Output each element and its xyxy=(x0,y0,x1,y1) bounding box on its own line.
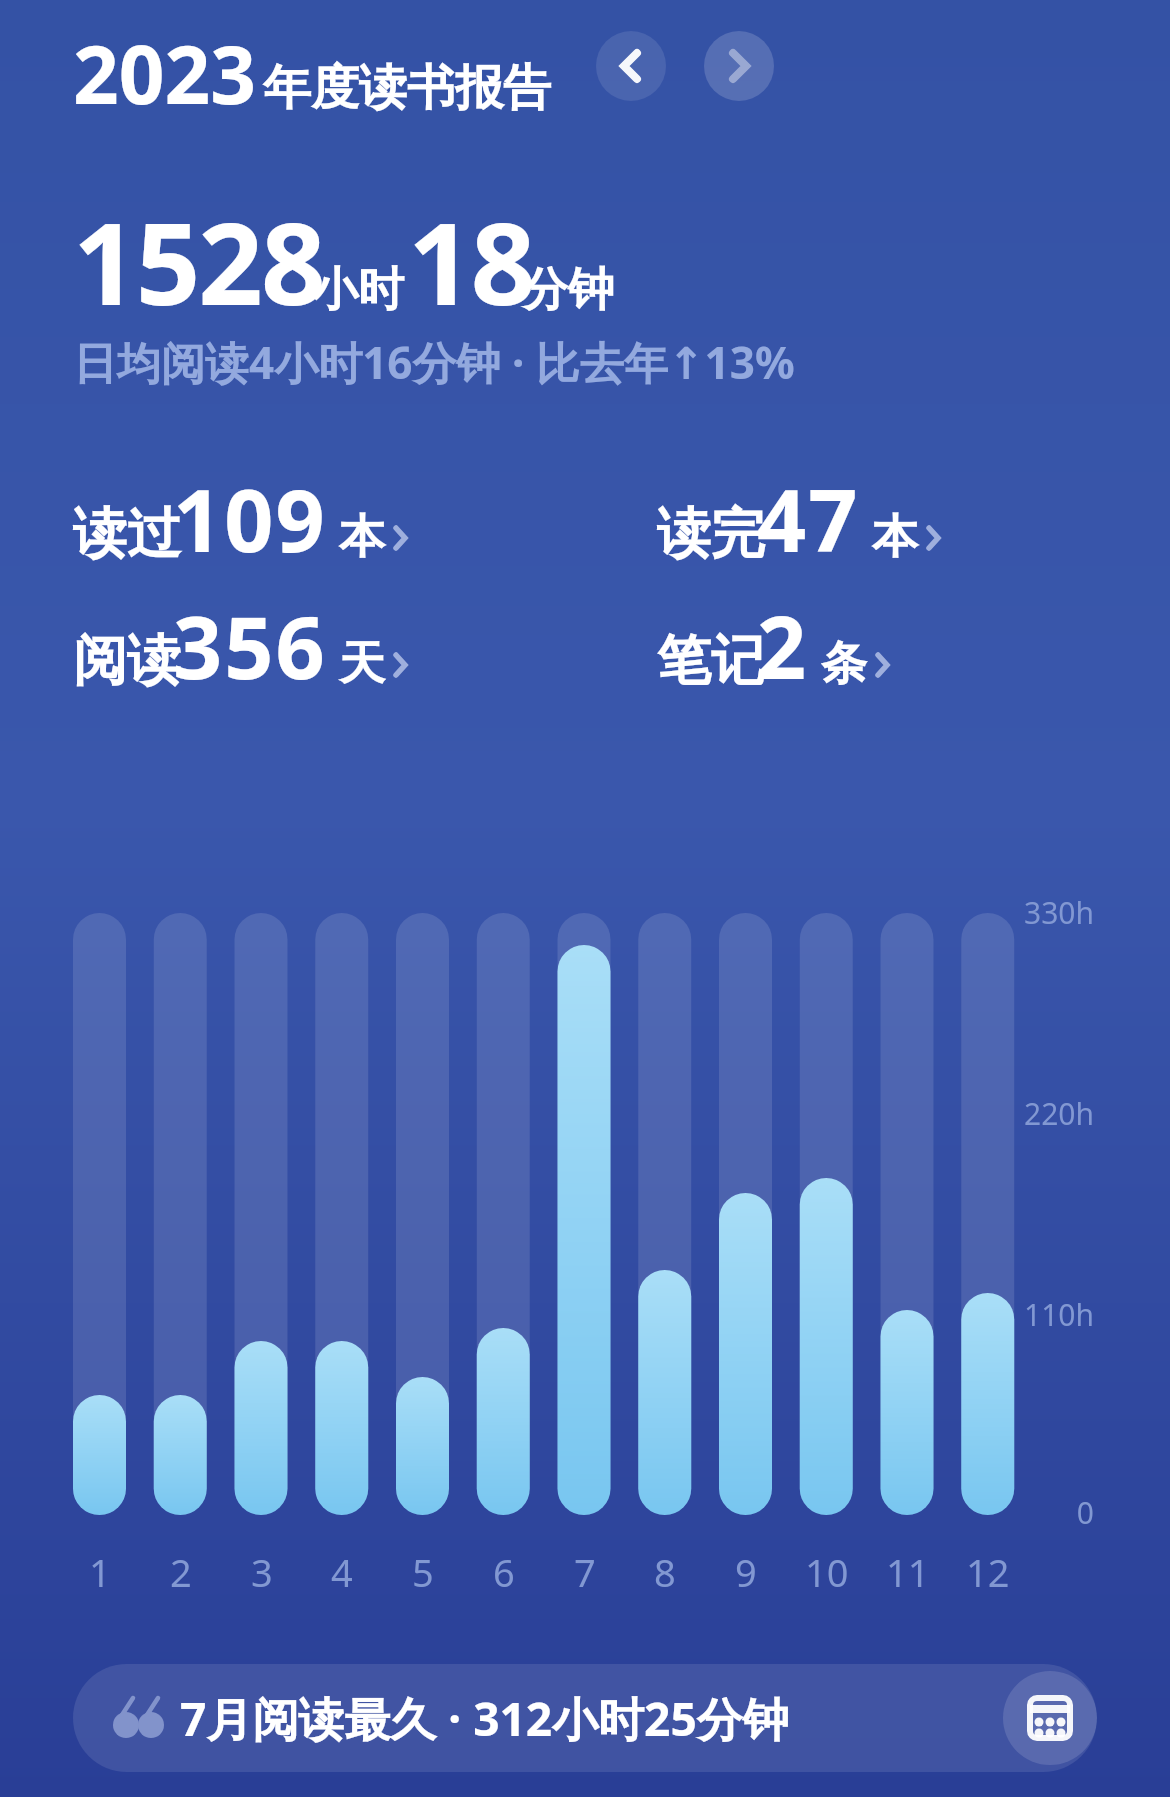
staticText: 18 xyxy=(408,184,534,338)
staticText: 2 xyxy=(757,587,809,704)
staticText: 阅读 xyxy=(73,627,181,695)
staticText: 220h xyxy=(1004,1093,1094,1134)
staticText: 本 xyxy=(872,508,918,566)
staticText: 0 xyxy=(1004,1492,1094,1533)
staticText: 2023 xyxy=(73,18,257,127)
staticText: 小时 xyxy=(312,261,404,319)
staticText: 9 xyxy=(735,1546,757,1598)
staticText: 2 xyxy=(170,1546,192,1598)
button[interactable]: 读过 xyxy=(73,460,409,577)
staticText: 4 xyxy=(331,1546,353,1598)
staticText: 109 xyxy=(173,460,327,577)
staticText: 330h xyxy=(1004,892,1094,933)
staticText: 天 xyxy=(339,635,385,693)
button[interactable] xyxy=(704,31,774,101)
staticText: 12 xyxy=(966,1546,1010,1598)
staticText: 5 xyxy=(412,1546,434,1598)
button[interactable]: 阅读 xyxy=(73,587,409,704)
staticText: 条 xyxy=(821,635,867,693)
staticText: 47 xyxy=(757,460,860,577)
staticText: 8 xyxy=(654,1546,676,1598)
staticText: 10 xyxy=(805,1546,849,1598)
staticText: 读过 xyxy=(73,500,181,568)
staticText: 110h xyxy=(1004,1294,1094,1335)
staticText: 11 xyxy=(886,1546,930,1598)
staticText: 分钟 xyxy=(522,261,614,319)
staticText: 3 xyxy=(251,1546,273,1598)
staticText: 6 xyxy=(493,1546,515,1598)
staticText: 笔记 xyxy=(657,627,765,695)
staticText: 7 xyxy=(574,1546,596,1598)
button[interactable]: 7月阅读最久 · 312小时25分钟 xyxy=(73,1664,1097,1772)
staticText: 读完 xyxy=(657,500,765,568)
staticText: 年度读书报告 xyxy=(263,58,551,118)
staticText: 356 xyxy=(173,587,327,704)
button[interactable]: 读完 xyxy=(657,460,942,577)
button[interactable] xyxy=(596,31,666,101)
staticText: 1528 xyxy=(73,184,324,338)
button[interactable]: 笔记 xyxy=(657,587,891,704)
staticText: 本 xyxy=(339,508,385,566)
staticText: 1 xyxy=(89,1546,111,1598)
staticText: 7月阅读最久 · 312小时25分钟 xyxy=(180,1687,789,1750)
staticText: 日均阅读4小时16分钟 · 比去年↑13% xyxy=(73,332,795,392)
